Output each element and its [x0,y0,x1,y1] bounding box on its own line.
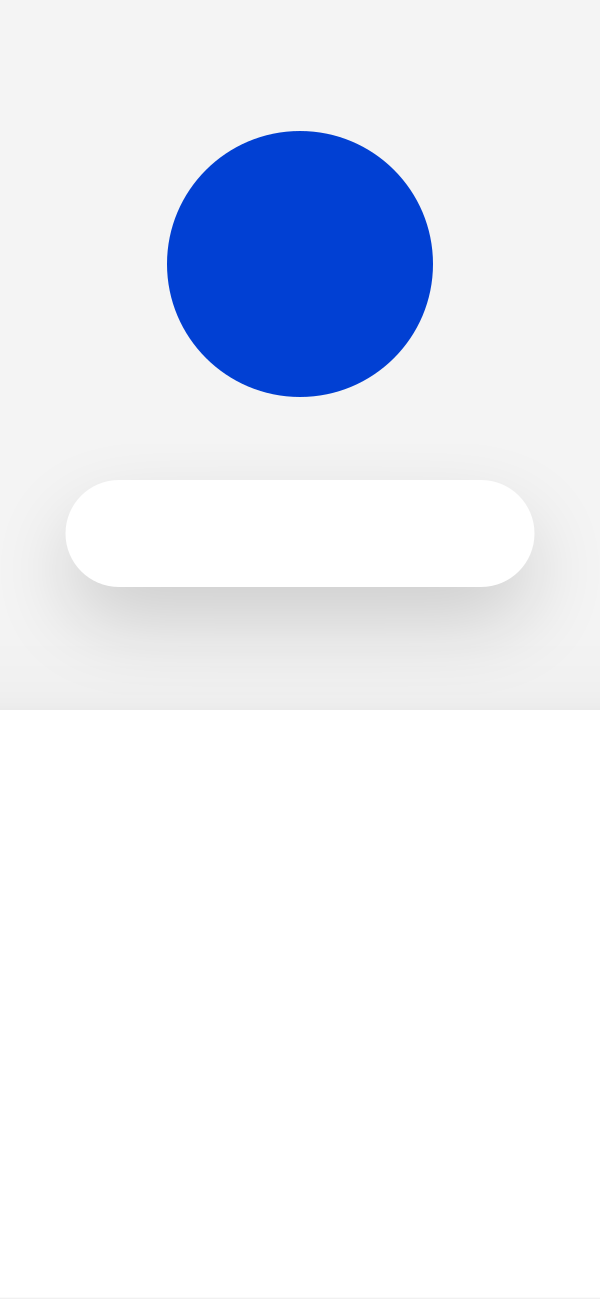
button[interactable]: Search [65,480,534,587]
button[interactable]: Profile [167,131,433,397]
